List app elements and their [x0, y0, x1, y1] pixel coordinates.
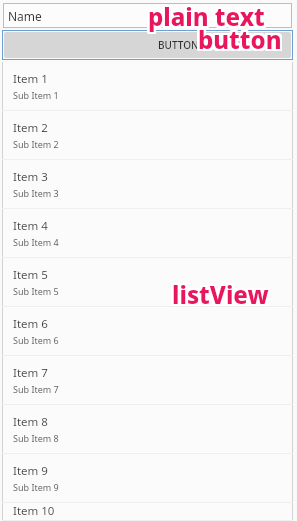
- staticText: plain text: [147, 2, 264, 35]
- staticText: plain text: [150, 0, 267, 31]
- staticText: Name: [8, 8, 42, 24]
- button[interactable]: Item 7: [2, 356, 293, 405]
- staticText: button: [196, 23, 280, 56]
- staticText: Item 4: [13, 218, 48, 234]
- button[interactable]: Item 2: [2, 111, 293, 160]
- staticText: button: [198, 25, 282, 58]
- staticText: BUTTON: [158, 38, 199, 52]
- staticText: Item 8: [13, 414, 48, 430]
- staticText: plain text: [149, 2, 266, 35]
- staticText: Item 2: [13, 120, 48, 136]
- staticText: button: [196, 24, 280, 57]
- staticText: button: [199, 25, 283, 58]
- staticText: plain text: [146, 0, 263, 32]
- staticText: button: [200, 23, 284, 56]
- staticText: button: [197, 25, 281, 58]
- button[interactable]: Item 4: [2, 209, 293, 258]
- staticText: Sub Item 7: [13, 383, 59, 395]
- staticText: plain text: [148, 2, 265, 35]
- staticText: listView: [174, 280, 271, 313]
- staticText: Sub Item 4: [13, 236, 59, 248]
- staticText: button: [200, 22, 284, 55]
- staticText: button: [196, 25, 280, 58]
- staticText: listView: [170, 279, 267, 312]
- staticText: listView: [172, 276, 269, 309]
- staticText: plain text: [150, 1, 267, 34]
- button[interactable]: Item 8: [2, 405, 293, 454]
- staticText: Sub Item 8: [13, 432, 59, 444]
- staticText: plain text: [148, 0, 265, 31]
- staticText: plain text: [146, 1, 263, 34]
- button[interactable]: Item 6: [2, 307, 293, 356]
- staticText: Item 9: [13, 463, 48, 479]
- staticText: Item 6: [13, 316, 48, 332]
- staticText: Item 1: [13, 71, 48, 87]
- button[interactable]: Item 9: [2, 454, 293, 503]
- button[interactable]: Item 10: [2, 503, 293, 521]
- staticText: Sub Item 5: [13, 285, 59, 297]
- button[interactable]: Name: [3, 3, 292, 28]
- staticText: Sub Item 9: [13, 481, 59, 493]
- staticText: button: [200, 24, 284, 57]
- staticText: plain text: [150, 2, 267, 35]
- staticText: listView: [170, 278, 267, 311]
- staticText: button: [198, 21, 282, 54]
- staticText: listView: [170, 277, 267, 310]
- staticText: button: [198, 23, 282, 56]
- button[interactable]: Item 3: [2, 160, 293, 209]
- staticText: listView: [172, 280, 269, 313]
- staticText: plain text: [149, 0, 266, 31]
- staticText: button: [197, 21, 281, 54]
- staticText: button: [196, 21, 280, 54]
- button[interactable]: Item 5: [2, 258, 293, 307]
- staticText: Sub Item 3: [13, 187, 59, 199]
- staticText: button: [196, 22, 280, 55]
- staticText: Sub Item 1: [13, 89, 59, 101]
- staticText: listView: [174, 279, 271, 312]
- staticText: button: [200, 21, 284, 54]
- staticText: listView: [170, 280, 267, 313]
- staticText: plain text: [146, 2, 263, 35]
- staticText: listView: [174, 277, 271, 310]
- staticText: plain text: [146, 0, 263, 31]
- staticText: listView: [170, 276, 267, 309]
- staticText: listView: [173, 280, 270, 313]
- staticText: listView: [174, 278, 271, 311]
- staticText: button: [199, 21, 283, 54]
- staticText: Sub Item 6: [13, 334, 59, 346]
- staticText: listView: [171, 276, 268, 309]
- staticText: plain text: [148, 0, 265, 33]
- staticText: button: [200, 25, 284, 58]
- staticText: listView: [171, 280, 268, 313]
- staticText: Item 3: [13, 169, 48, 185]
- staticText: Sub Item 2: [13, 138, 59, 150]
- staticText: plain text: [146, 0, 263, 33]
- staticText: listView: [174, 276, 271, 309]
- button[interactable]: BUTTON: [4, 32, 291, 58]
- staticText: Item 10: [13, 503, 55, 519]
- button[interactable]: Item 1: [2, 62, 293, 111]
- staticText: listView: [172, 278, 269, 311]
- staticText: Item 5: [13, 267, 48, 283]
- staticText: listView: [173, 276, 270, 309]
- staticText: Item 7: [13, 365, 48, 381]
- staticText: plain text: [147, 0, 264, 31]
- staticText: plain text: [150, 0, 267, 32]
- staticText: plain text: [150, 0, 267, 33]
